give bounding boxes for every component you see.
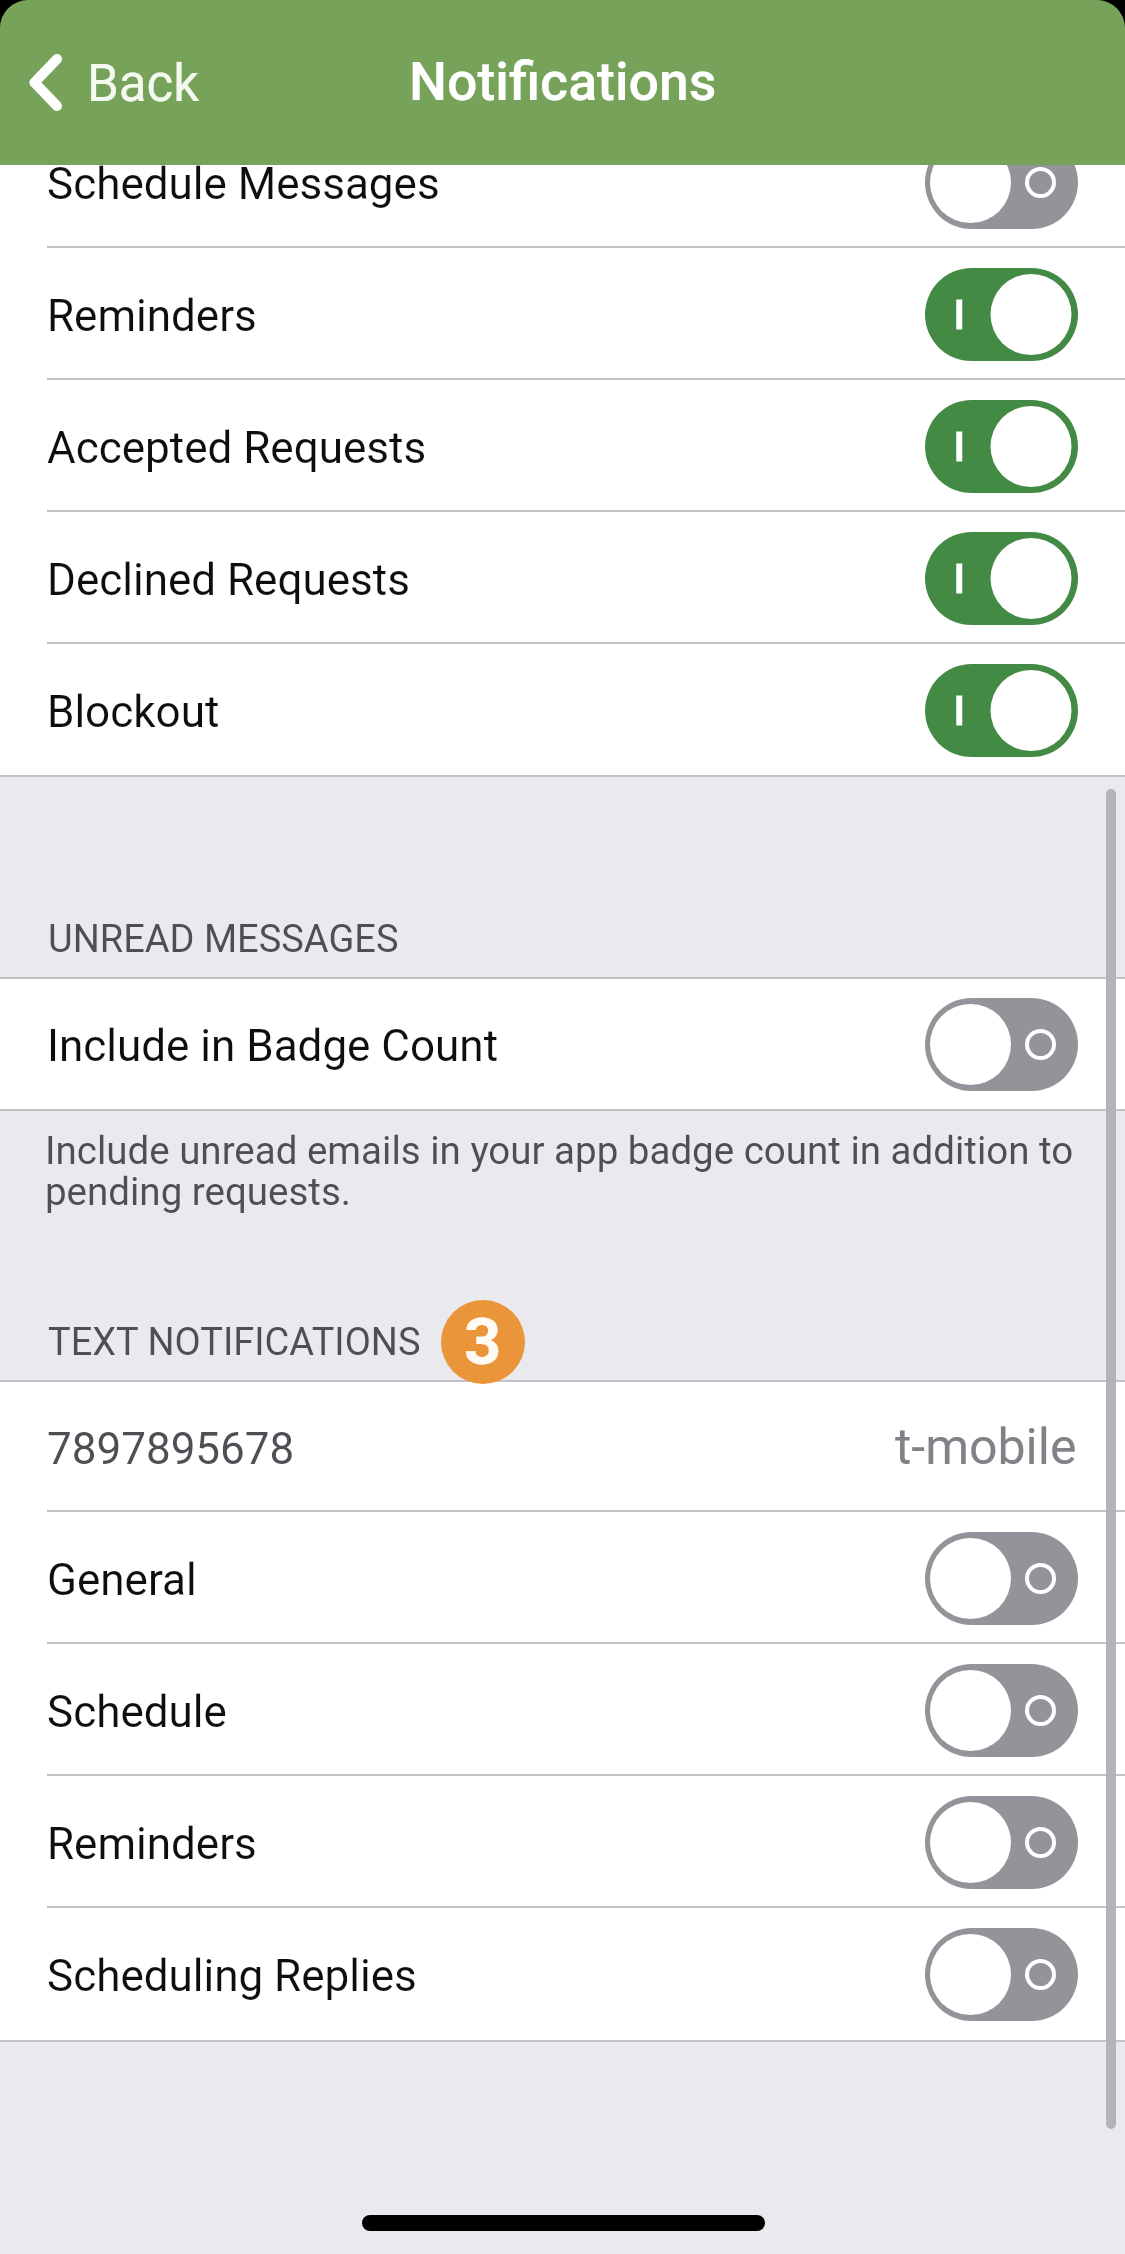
staticText: Back (87, 54, 200, 114)
staticText: General (47, 1554, 197, 1606)
button[interactable]: Switch on (925, 532, 1078, 625)
button[interactable]: Accepted Requests (0, 380, 1125, 512)
button[interactable]: Switch off (925, 1664, 1078, 1757)
other: Back (7, 42, 69, 126)
button[interactable]: Switch off (925, 1532, 1078, 1625)
staticText: Notifications (409, 50, 717, 113)
staticText: TEXT NOTIFICATIONS (48, 1320, 421, 1365)
button[interactable]: Switch on (925, 400, 1078, 493)
staticText: Blockout (47, 686, 220, 738)
staticText: Schedule Messages (47, 158, 440, 210)
button[interactable]: Switch off (925, 136, 1078, 229)
staticText: 7897895678 (47, 1423, 295, 1475)
button[interactable]: General (0, 1512, 1125, 1644)
button[interactable]: Reminders (0, 248, 1125, 380)
button[interactable]: Switch off (925, 998, 1078, 1091)
button[interactable]: Blockout (0, 644, 1125, 776)
button[interactable]: Switch off (925, 1928, 1078, 2021)
button[interactable]: Declined Requests (0, 512, 1125, 644)
button[interactable]: Switch on (925, 268, 1078, 361)
staticText: Include unread emails in your app badge … (45, 1128, 1095, 1215)
staticText: 3 (464, 1304, 502, 1380)
staticText: Include in Badge Count (47, 1020, 499, 1072)
button[interactable]: Switch off (925, 1796, 1078, 1889)
button[interactable]: 7897895678 (0, 1382, 1125, 1512)
staticText: Declined Requests (47, 554, 410, 606)
button[interactable]: Switch on (925, 664, 1078, 757)
button[interactable]: Schedule (0, 1644, 1125, 1776)
staticText: Reminders (47, 1818, 257, 1870)
staticText: t-mobile (895, 1418, 1077, 1477)
button[interactable]: Back (7, 42, 182, 126)
button[interactable]: Schedule Messages (0, 116, 1125, 248)
staticText: Reminders (47, 290, 257, 342)
staticText: UNREAD MESSAGES (48, 917, 399, 962)
staticText: Schedule (47, 1686, 227, 1738)
staticText: Accepted Requests (47, 422, 427, 474)
button[interactable]: 3 unread (441, 1300, 525, 1384)
button[interactable]: Include in Badge Count (0, 979, 1125, 1109)
button[interactable]: Scheduling Replies (0, 1908, 1125, 2040)
button[interactable]: Reminders (0, 1776, 1125, 1908)
staticText: Scheduling Replies (47, 1950, 417, 2002)
